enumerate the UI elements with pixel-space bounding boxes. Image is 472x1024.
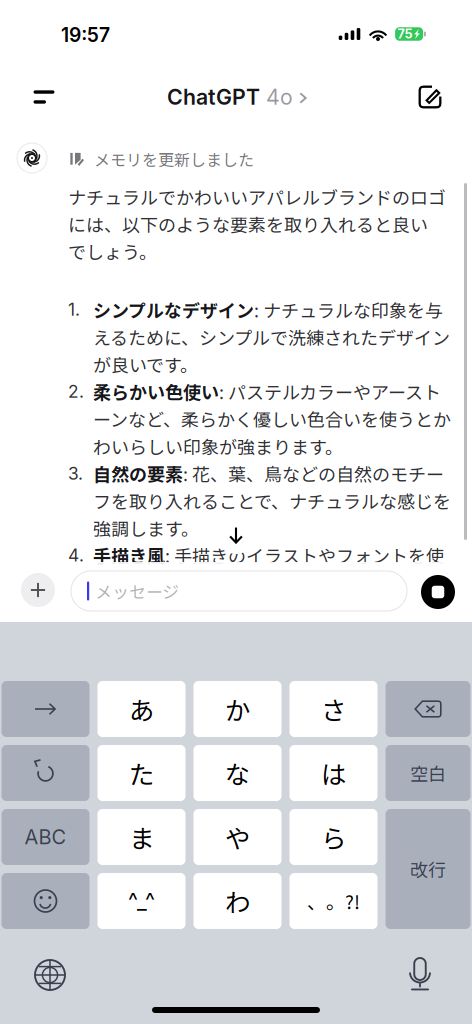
button[interactable]: 空白 <box>385 745 470 801</box>
staticText: さ <box>321 691 346 727</box>
staticText: : パステルカラーやアースト <box>219 378 441 404</box>
button[interactable]: さ <box>289 681 377 737</box>
staticText: 75 <box>398 26 413 42</box>
button[interactable]: Next candidate <box>1 681 89 737</box>
staticText: でしょう。 <box>68 238 157 264</box>
staticText: か <box>225 691 250 727</box>
staticText: には、以下のような要素を取り入れると良い <box>68 211 428 237</box>
staticText: えるために、シンプルで洗練されたデザイン <box>93 324 450 350</box>
button[interactable]: Emoji <box>1 873 89 929</box>
staticText: あ <box>129 691 154 727</box>
staticText: フを取り入れることで、ナチュラルな感じを <box>93 488 451 514</box>
staticText: 2. <box>68 381 84 402</box>
staticText: は <box>321 755 346 791</box>
button[interactable]: Switch keyboard <box>28 953 72 997</box>
staticText: 19:57 <box>61 23 110 47</box>
staticText: ーンなど、柔らかく優しい色合いを使うとか <box>93 406 451 432</box>
button[interactable]: 、。?! <box>289 873 377 929</box>
button[interactable]: ChatGPT <box>167 75 307 119</box>
staticText: ま <box>129 819 154 855</box>
button[interactable]: た <box>97 745 185 801</box>
staticText: ^_^ <box>128 888 155 914</box>
staticText: な <box>225 755 250 791</box>
staticText: た <box>129 755 154 791</box>
staticText: 、。?! <box>307 887 360 914</box>
button[interactable]: Delete <box>385 681 470 737</box>
staticText: 1. <box>68 299 80 320</box>
staticText: メッセージ <box>95 579 179 603</box>
staticText: メモリを更新しました <box>94 147 254 171</box>
button[interactable]: Scroll to bottom <box>217 516 255 554</box>
staticText: 4o <box>266 84 293 110</box>
button[interactable]: Undo <box>1 745 89 801</box>
button[interactable]: ^_^ <box>97 873 185 929</box>
staticText: 改行 <box>410 856 446 882</box>
staticText: や <box>225 819 250 855</box>
staticText: : ナチュラルな印象を与 <box>254 296 443 323</box>
staticText: ナチュラルでかわいいアパレルブランドのロゴ <box>68 184 446 210</box>
staticText: 自然の要素 <box>93 460 183 486</box>
staticText: : 手描きのイラストやフォントを使 <box>165 542 444 568</box>
staticText: わ <box>225 883 250 919</box>
button[interactable]: な <box>193 745 281 801</box>
staticText: 強調します。 <box>93 515 199 541</box>
button[interactable]: Stop <box>421 575 455 609</box>
button[interactable]: Sidebar <box>22 75 66 119</box>
staticText: 柔らかい色使い <box>93 378 219 404</box>
button[interactable]: わ <box>193 873 281 929</box>
button[interactable]: メッセージ <box>71 571 407 611</box>
staticText: シンプルなデザイン <box>93 296 254 323</box>
button[interactable]: や <box>193 809 281 865</box>
staticText: ら <box>321 819 346 855</box>
button[interactable]: ま <box>97 809 185 865</box>
button[interactable]: は <box>289 745 377 801</box>
button[interactable]: ら <box>289 809 377 865</box>
staticText: ChatGPT <box>167 84 260 110</box>
button[interactable]: New chat <box>408 75 452 119</box>
button[interactable]: か <box>193 681 281 737</box>
staticText: 空白 <box>410 760 446 786</box>
staticText: わいらしい印象が強まります。 <box>93 433 343 459</box>
staticText: : 花、葉、鳥などの自然のモチー <box>183 460 444 486</box>
button[interactable]: あ <box>97 681 185 737</box>
staticText: 3. <box>68 463 83 484</box>
staticText: 4. <box>68 545 84 566</box>
staticText: ABC <box>24 825 66 849</box>
staticText: が良いです。 <box>93 351 198 377</box>
button[interactable]: 改行 <box>385 809 470 929</box>
staticText: 手描き風 <box>93 542 165 568</box>
button[interactable]: Dictate <box>398 953 442 997</box>
button[interactable]: Attach <box>21 573 55 607</box>
button[interactable]: ABC <box>1 809 89 865</box>
